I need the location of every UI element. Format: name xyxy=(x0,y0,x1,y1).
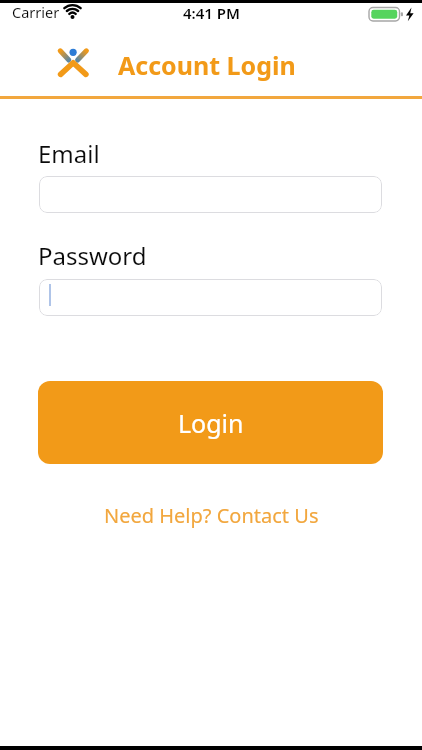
staticText: Email xyxy=(38,137,100,170)
staticText: 4:41 PM xyxy=(183,3,240,23)
staticText: Login xyxy=(178,406,244,440)
staticText: Password xyxy=(38,239,147,272)
button[interactable]: Need Help? Contact Us xyxy=(104,502,319,529)
button[interactable] xyxy=(39,279,382,316)
button[interactable]: Login xyxy=(38,381,383,464)
staticText: Carrier xyxy=(12,2,60,22)
button[interactable] xyxy=(39,176,382,213)
staticText: Account Login xyxy=(118,48,296,82)
